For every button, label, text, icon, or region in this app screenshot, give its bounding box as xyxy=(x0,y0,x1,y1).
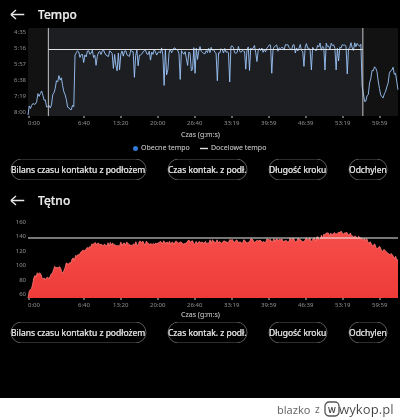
staticText: 6:40 xyxy=(78,119,90,127)
staticText: Tempo xyxy=(38,6,77,22)
staticText: 39:59 xyxy=(261,119,277,127)
staticText: 53:19 xyxy=(335,301,351,309)
button[interactable]: Wstecz xyxy=(4,1,30,27)
staticText: 26:40 xyxy=(187,119,203,127)
staticText: 33:19 xyxy=(224,119,240,127)
staticText: Długość kroku xyxy=(269,164,327,176)
staticText: 0:00 xyxy=(28,119,40,127)
staticText: wykop.pl xyxy=(339,400,394,418)
staticText: 59:59 xyxy=(372,119,388,127)
staticText: 59:59 xyxy=(372,301,388,309)
staticText: 5:16 xyxy=(0,44,26,52)
button[interactable]: Czas kontak. z podł. xyxy=(160,322,255,343)
staticText: Odchylen xyxy=(349,164,387,176)
staticText: 120 xyxy=(0,247,26,255)
staticText: blazko xyxy=(277,402,311,417)
staticText: Czas (g:m:s) xyxy=(181,130,220,140)
staticText: 6:38 xyxy=(0,76,26,84)
staticText: Tętno xyxy=(38,192,71,208)
button[interactable]: Wstecz xyxy=(4,187,30,213)
staticText: 39:59 xyxy=(261,301,277,309)
staticText: 7:19 xyxy=(0,92,26,100)
staticText: 46:39 xyxy=(298,301,314,309)
staticText: 20:00 xyxy=(150,301,166,309)
button[interactable]: Odchylen xyxy=(341,159,395,180)
staticText: 13:20 xyxy=(113,119,129,127)
staticText: Długość kroku xyxy=(269,327,327,339)
staticText: 53:19 xyxy=(335,119,351,127)
button[interactable]: Długość kroku xyxy=(261,322,335,343)
staticText: Obecne tempo xyxy=(141,143,190,153)
staticText: 4:35 xyxy=(0,28,26,36)
staticText: 60 xyxy=(0,290,26,298)
staticText: 46:39 xyxy=(298,119,314,127)
staticText: Bilans czasu kontaktu z podłożem xyxy=(11,327,146,339)
staticText: 8:00 xyxy=(0,108,26,116)
staticText: Czas kontak. z podł. xyxy=(168,327,247,339)
staticText: 140 xyxy=(0,232,26,240)
staticText: 20:00 xyxy=(150,119,166,127)
staticText: 13:20 xyxy=(113,301,129,309)
staticText: 6:40 xyxy=(78,301,90,309)
button[interactable]: Długość kroku xyxy=(261,159,335,180)
staticText: z xyxy=(315,402,320,416)
staticText: Bilans czasu kontaktu z podłożem xyxy=(11,164,146,176)
staticText: 33:19 xyxy=(224,301,240,309)
staticText: 5:57 xyxy=(0,60,26,68)
button[interactable]: Czas kontak. z podł. xyxy=(160,159,255,180)
staticText: 80 xyxy=(0,276,26,284)
staticText: Odchylen xyxy=(349,327,387,339)
button[interactable]: Bilans czasu kontaktu z podłożem xyxy=(3,322,154,343)
button[interactable]: Bilans czasu kontaktu z podłożem xyxy=(3,159,154,180)
staticText: Czas kontak. z podł. xyxy=(168,164,247,176)
button[interactable]: Odchylen xyxy=(341,322,395,343)
staticText: 100 xyxy=(0,261,26,269)
staticText: Czas (g:m:s) xyxy=(181,310,220,320)
staticText: W xyxy=(328,404,336,415)
staticText: 26:40 xyxy=(187,301,203,309)
staticText: 160 xyxy=(0,218,26,226)
staticText: Docelowe tempo xyxy=(211,143,267,153)
staticText: 0:00 xyxy=(28,301,40,309)
